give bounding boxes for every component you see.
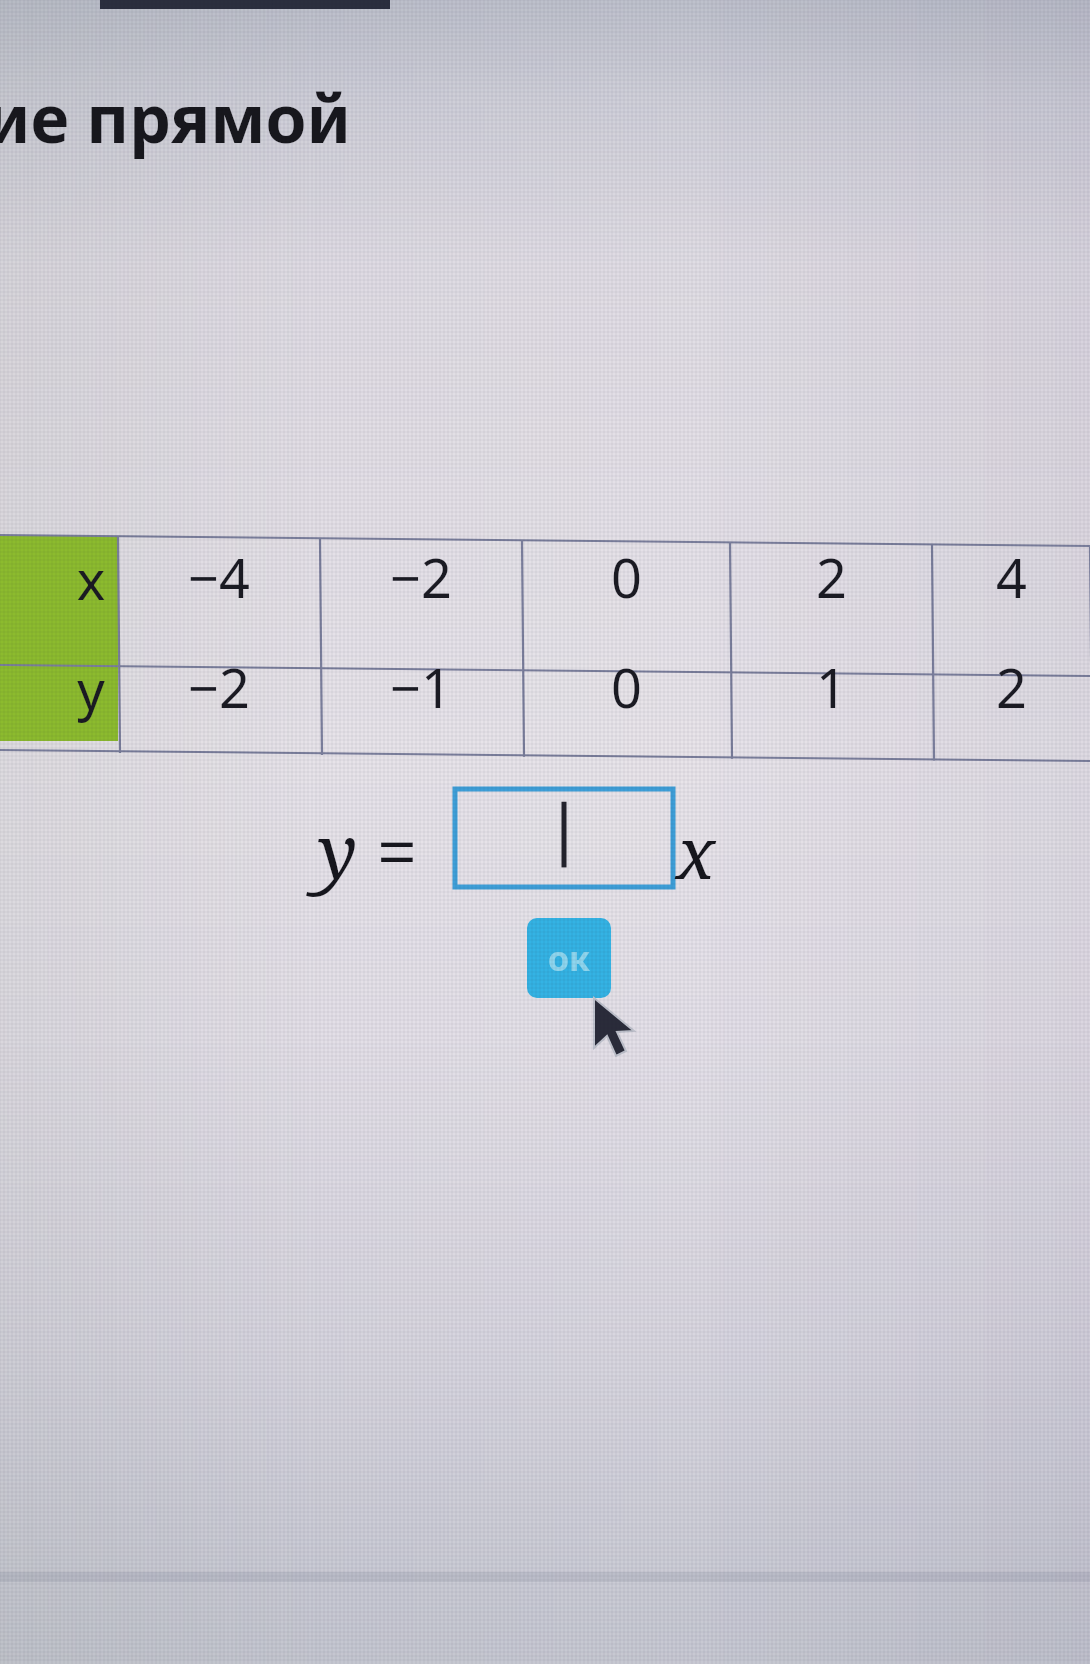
staticText: −1 (390, 650, 452, 724)
staticText: 2 (816, 540, 847, 614)
staticText: х (77, 542, 105, 616)
staticText: 2 (996, 650, 1027, 724)
staticText: −2 (188, 650, 250, 724)
staticText: 1 (816, 650, 847, 724)
staticText: ие прямой (0, 72, 351, 162)
button[interactable]: ок (527, 918, 611, 998)
staticText: 0 (611, 650, 642, 724)
staticText: y = (318, 800, 418, 901)
staticText: 0 (611, 540, 642, 614)
staticText: ок (548, 935, 591, 981)
staticText: −2 (390, 540, 452, 614)
staticText: 4 (996, 540, 1027, 614)
staticText: −4 (188, 540, 250, 614)
staticText: у (77, 652, 105, 726)
button[interactable]: Ввод коэффициента (455, 789, 673, 887)
staticText: x (676, 802, 716, 900)
